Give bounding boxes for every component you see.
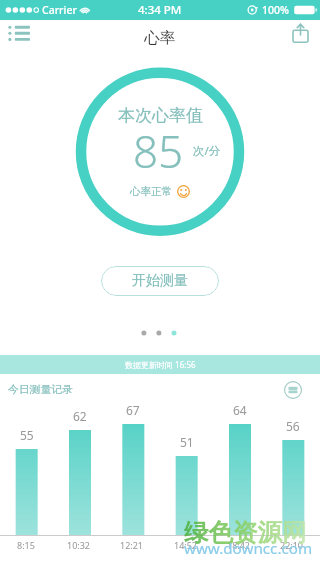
staticText: 今日测量记录 (8, 383, 73, 397)
staticText: 8:15 (17, 539, 35, 551)
staticText: 10:32 (67, 539, 91, 551)
staticText: www.downcc.com (184, 538, 313, 559)
button[interactable]: Menu (0, 20, 40, 56)
staticText: Carrier (42, 3, 77, 17)
staticText: 14:52 (174, 539, 198, 551)
button[interactable]: More (283, 380, 303, 400)
button[interactable]: Share (280, 20, 320, 56)
staticText: 数据更新时间 16:56 (125, 359, 196, 370)
staticText: 18:42 (227, 539, 251, 551)
staticText: 51 (180, 434, 194, 450)
staticText: 64 (233, 402, 247, 418)
staticText: 心率正常 (130, 185, 172, 198)
staticText: 绿色资源网 (184, 517, 307, 548)
staticText: 100% (262, 3, 289, 17)
staticText: 次/分 (193, 143, 221, 159)
staticText: 12:21 (120, 539, 144, 551)
staticText: 心率 (144, 28, 176, 48)
button[interactable]: 开始测量 (101, 266, 219, 296)
staticText: 67 (126, 402, 140, 418)
staticText: 85 (133, 121, 184, 181)
staticText: 62 (73, 408, 87, 424)
staticText: 56 (286, 418, 300, 434)
staticText: 4:34 PM (138, 2, 182, 18)
staticText: 55 (20, 427, 34, 443)
staticText: 开始测量 (132, 272, 188, 290)
staticText: 22:10 (280, 539, 304, 551)
staticText: 本次心率值 (118, 105, 203, 126)
